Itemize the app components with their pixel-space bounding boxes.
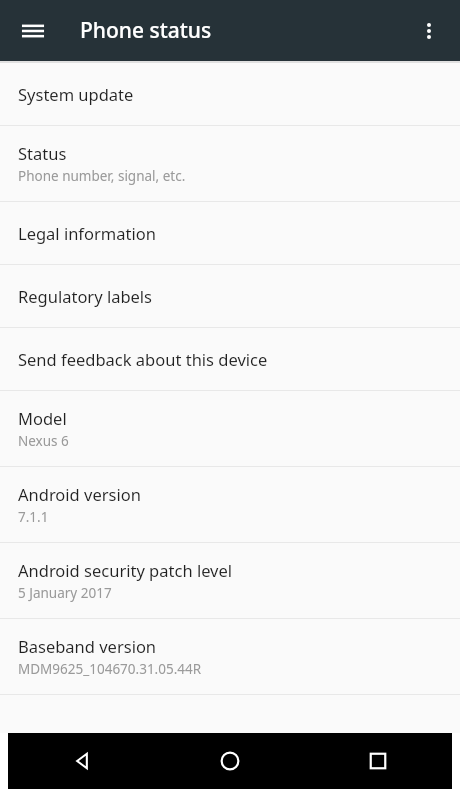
button[interactable]: Back: [8, 733, 156, 789]
button[interactable]: Status: [0, 126, 460, 201]
button[interactable]: Navigation menu: [11, 9, 55, 53]
staticText: Model: [18, 407, 67, 429]
staticText: Phone number, signal, etc.: [18, 167, 186, 185]
staticText: MDM9625_104670.31.05.44R: [18, 660, 202, 678]
button[interactable]: Recent apps: [304, 733, 452, 789]
button[interactable]: Android version: [0, 467, 460, 542]
staticText: Android version: [18, 483, 141, 505]
staticText: Regulatory labels: [18, 285, 153, 307]
button[interactable]: Model: [0, 391, 460, 466]
staticText: Nexus 6: [18, 432, 69, 450]
button[interactable]: Send feedback about this device: [0, 328, 460, 390]
staticText: Send feedback about this device: [18, 348, 268, 370]
staticText: Baseband version: [18, 635, 157, 657]
staticText: 5 January 2017: [18, 584, 112, 602]
button[interactable]: More options: [407, 9, 451, 53]
button[interactable]: Legal information: [0, 202, 460, 264]
staticText: Phone status: [80, 16, 212, 45]
button[interactable]: Baseband version: [0, 619, 460, 694]
button[interactable]: Home: [156, 733, 304, 789]
staticText: Android security patch level: [18, 559, 233, 581]
button[interactable]: Android security patch level: [0, 543, 460, 618]
button[interactable]: System update: [0, 63, 460, 125]
staticText: 7.1.1: [18, 508, 49, 526]
staticText: Legal information: [18, 222, 156, 244]
staticText: System update: [18, 83, 134, 105]
button[interactable]: Regulatory labels: [0, 265, 460, 327]
staticText: Status: [18, 142, 67, 164]
